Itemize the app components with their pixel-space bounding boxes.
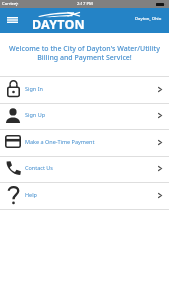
button[interactable]: Menu — [3, 10, 22, 29]
staticText: Carrier — [2, 1, 16, 7]
staticText: Sign Up — [25, 111, 46, 118]
button[interactable]: Sign Up — [0, 103, 169, 129]
button[interactable]: Make a One-Time Payment — [0, 129, 169, 156]
staticText: 2:17 PM — [77, 1, 93, 7]
staticText: DAYTON — [32, 16, 85, 33]
button[interactable]: Sign In — [0, 76, 169, 103]
button[interactable]: Contact Us — [0, 156, 169, 182]
staticText: Make a One-Time Payment — [25, 138, 95, 145]
staticText: Welcome to the City of Dayton's Water/Ut… — [4, 44, 165, 62]
button[interactable]: Help — [0, 182, 169, 209]
staticText: Help — [25, 191, 37, 198]
staticText: Contact Us — [25, 164, 53, 171]
staticText: Sign In — [25, 85, 43, 92]
staticText: Dayton, Ohio — [135, 15, 162, 21]
